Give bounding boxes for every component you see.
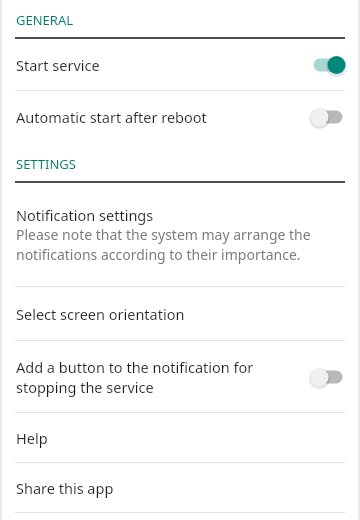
staticText: Select screen orientation: [16, 304, 185, 324]
staticText: Notification settings: [16, 205, 154, 225]
other: Start service toggle: [305, 50, 351, 80]
button[interactable]: Add a button to the notification for sto…: [0, 341, 360, 412]
other: Add stop button toggle: [305, 362, 351, 392]
staticText: Help: [16, 428, 48, 448]
button[interactable]: Start service: [0, 39, 360, 90]
button[interactable]: Select screen orientation: [0, 287, 360, 340]
staticText: Automatic start after reboot: [16, 107, 207, 127]
other: Automatic start after reboot toggle: [305, 102, 351, 132]
button[interactable]: Automatic start after reboot: [0, 91, 360, 143]
staticText: GENERAL: [16, 11, 74, 29]
button[interactable]: Help: [0, 413, 360, 462]
staticText: Add a button to the notification for sto…: [16, 357, 301, 397]
staticText: Share this app: [16, 478, 114, 498]
button[interactable]: Notification settings: [0, 183, 360, 286]
staticText: Please note that the system may arrange …: [16, 225, 351, 265]
staticText: Start service: [16, 55, 100, 75]
button[interactable]: Share this app: [0, 463, 360, 512]
staticText: SETTINGS: [16, 155, 76, 173]
